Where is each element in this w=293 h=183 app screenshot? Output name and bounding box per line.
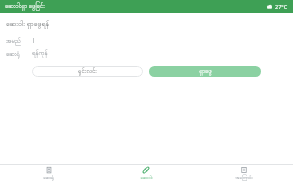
staticText: အကြောင်း: [235, 175, 253, 182]
staticText: အမည်: [6, 37, 28, 46]
button[interactable]: Medicines: [97, 165, 195, 183]
staticText: ဆေးရုံ: [6, 50, 28, 59]
staticText: 27°C: [275, 3, 288, 10]
staticText: ဆေးရုံ: [43, 175, 54, 182]
button[interactable]: အမည်: [0, 36, 293, 46]
button[interactable]: About: [195, 165, 293, 183]
staticText: |: [32, 36, 36, 44]
staticText: ရန်ကုန်: [32, 49, 48, 58]
staticText: ဆေးဝါး ရှာဖွေရန်: [6, 19, 50, 30]
button[interactable]: Hospitals: [0, 165, 97, 183]
staticText: ဆေးဝါး: [140, 175, 153, 182]
button[interactable]: ရှင်းလင်း: [32, 66, 143, 77]
button[interactable]: ရှာဖွေ: [149, 66, 261, 77]
staticText: ဆေးဝါးရှာ ဖွေခြင်း: [5, 2, 45, 11]
staticText: ရှာဖွေ: [199, 67, 212, 76]
staticText: ရှင်းလင်း: [78, 67, 97, 76]
button[interactable]: ဆေးရုံ: [0, 49, 293, 59]
